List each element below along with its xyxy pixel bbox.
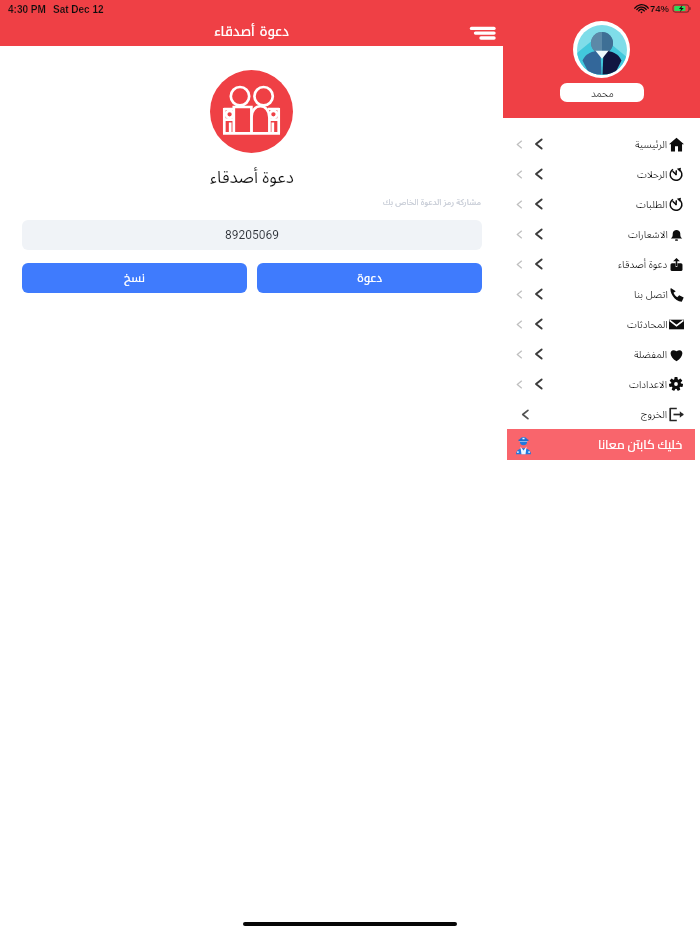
staticText: دعوة أصدقاء	[210, 165, 294, 188]
staticText: مشاركة رمز الدعوة الخاص بك	[383, 196, 481, 208]
staticText: خليك كابتن معانا	[598, 433, 683, 456]
button[interactable]: الطلبات	[503, 189, 700, 219]
staticText: دعوة أصدقاء	[618, 257, 668, 271]
button[interactable]: نسخ	[22, 263, 247, 293]
staticText: الطلبات	[636, 197, 668, 211]
button[interactable]: الاعدادات	[503, 369, 700, 399]
button[interactable]: دعوة أصدقاء	[503, 249, 700, 279]
staticText: 4:30 PM	[8, 4, 46, 15]
staticText: الاعدادات	[629, 377, 668, 391]
button[interactable]: المفضلة	[503, 339, 700, 369]
staticText: المحادثات	[627, 317, 668, 331]
button[interactable]: المحادثات	[503, 309, 700, 339]
button[interactable]: 89205069	[22, 220, 482, 250]
button[interactable]: دعوة	[257, 263, 482, 293]
staticText: الاشعارات	[628, 227, 668, 241]
staticText: دعوة	[357, 267, 383, 289]
staticText: الرئيسية	[635, 137, 668, 151]
staticText: Sat Dec 12	[53, 4, 104, 15]
button[interactable]: الاشعارات	[503, 219, 700, 249]
button[interactable]: محمد	[560, 83, 644, 102]
button[interactable]: خليك كابتن معانا	[507, 429, 695, 460]
staticText: 74%	[650, 3, 670, 14]
staticText: المفضلة	[634, 347, 668, 361]
staticText: الخروج	[641, 407, 668, 421]
button[interactable]: الرئيسية	[503, 129, 700, 159]
staticText: نسخ	[124, 267, 146, 289]
button[interactable]: الخروج	[503, 399, 700, 429]
staticText: الرحلات	[637, 167, 668, 181]
staticText: اتصل بنا	[634, 287, 668, 301]
button[interactable]: Menu	[464, 14, 500, 46]
button[interactable]: اتصل بنا	[503, 279, 700, 309]
staticText: 89205069	[225, 228, 279, 242]
staticText: دعوة أصدقاء	[214, 19, 289, 45]
button[interactable]: الرحلات	[503, 159, 700, 189]
staticText: محمد	[591, 86, 614, 100]
